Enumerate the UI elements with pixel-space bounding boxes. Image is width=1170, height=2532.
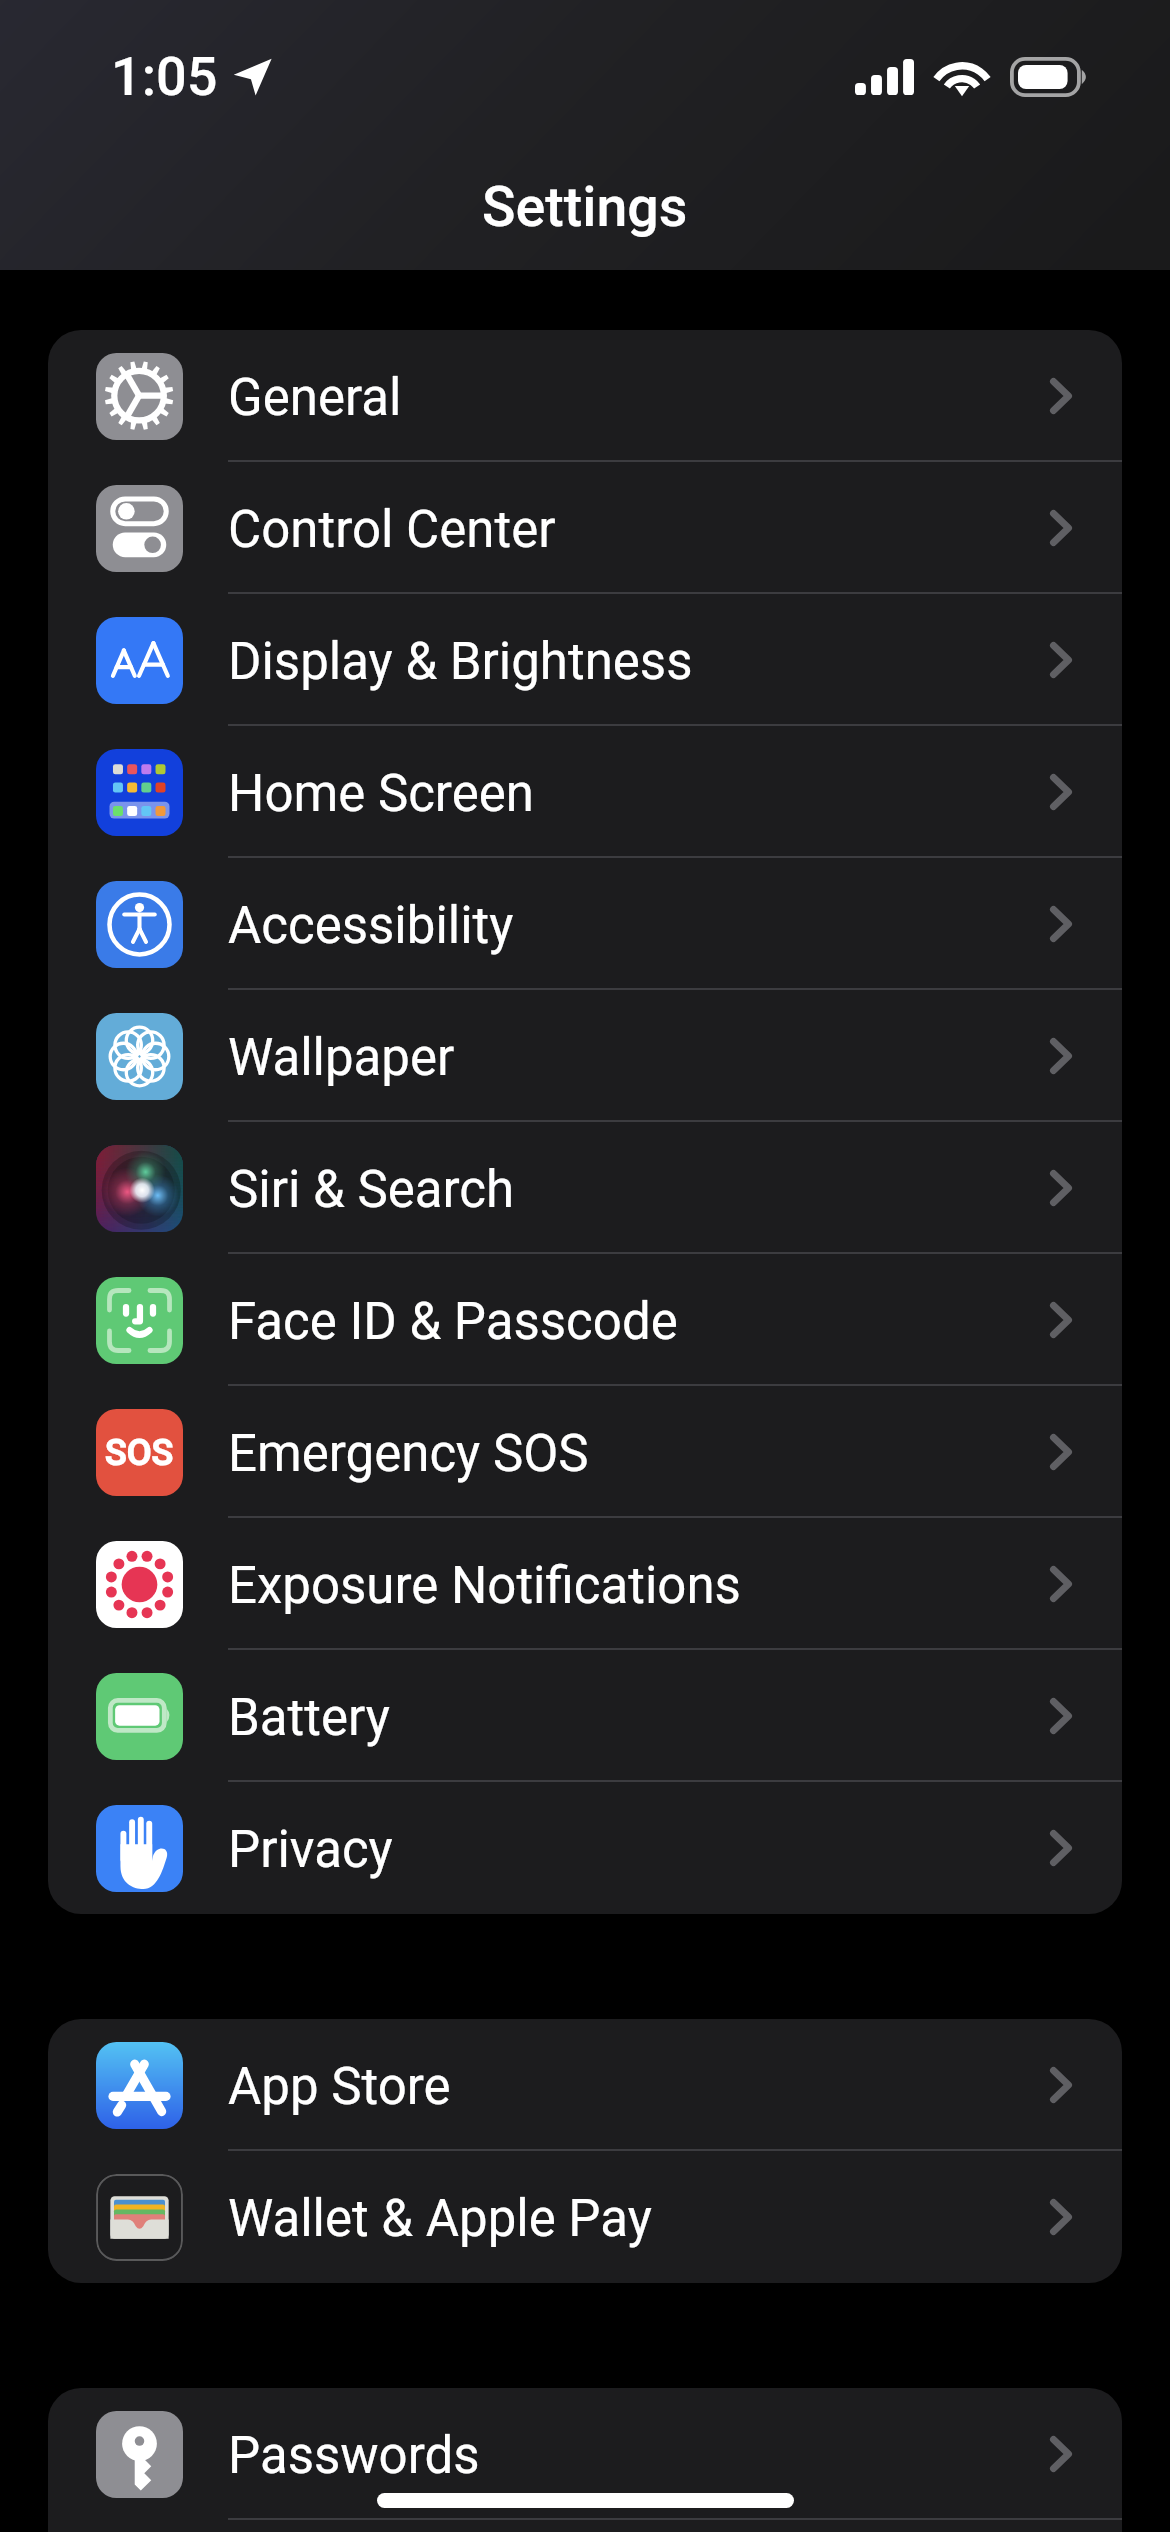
- staticText: Siri & Search: [228, 1160, 515, 1220]
- button[interactable]: Display & Brightness: [48, 594, 1122, 726]
- staticText: SOS: [105, 1432, 174, 1474]
- staticText: Battery: [228, 1688, 390, 1748]
- other: Location services active: [233, 58, 272, 96]
- staticText: Emergency SOS: [228, 1424, 589, 1484]
- button[interactable]: Battery: [48, 1650, 1122, 1782]
- other: Battery level: [1010, 57, 1090, 97]
- button[interactable]: Face ID & Passcode: [48, 1254, 1122, 1386]
- staticText: Wallpaper: [228, 1028, 455, 1088]
- staticText: Control Center: [228, 500, 556, 560]
- staticText: Wallet & Apple Pay: [228, 2189, 652, 2249]
- button[interactable]: General: [48, 330, 1122, 462]
- staticText: Passwords: [228, 2426, 480, 2486]
- staticText: Settings: [482, 175, 688, 240]
- button[interactable]: Home Screen: [48, 726, 1122, 858]
- staticText: General: [228, 368, 402, 428]
- button[interactable]: Wallet & Apple Pay: [48, 2151, 1122, 2283]
- staticText: Accessibility: [228, 896, 514, 956]
- staticText: Exposure Notifications: [228, 1556, 741, 1616]
- button[interactable]: Wallpaper: [48, 990, 1122, 1122]
- staticText: Face ID & Passcode: [228, 1292, 678, 1352]
- button[interactable]: Control Center: [48, 462, 1122, 594]
- other: Wi-Fi connected: [937, 59, 987, 96]
- staticText: Home Screen: [228, 764, 534, 824]
- staticText: App Store: [228, 2057, 451, 2117]
- staticText: Display & Brightness: [228, 632, 693, 692]
- other: Cellular signal strength: [855, 59, 914, 95]
- button[interactable]: Exposure Notifications: [48, 1518, 1122, 1650]
- button[interactable]: Accessibility: [48, 858, 1122, 990]
- button[interactable]: App Store: [48, 2019, 1122, 2151]
- button[interactable]: SOS: [48, 1386, 1122, 1518]
- button[interactable]: Passwords: [48, 2388, 1122, 2520]
- button[interactable]: Privacy: [48, 1782, 1122, 1914]
- staticText: Privacy: [228, 1820, 393, 1880]
- button[interactable]: Siri & Search: [48, 1122, 1122, 1254]
- staticText: 1:05: [111, 45, 218, 108]
